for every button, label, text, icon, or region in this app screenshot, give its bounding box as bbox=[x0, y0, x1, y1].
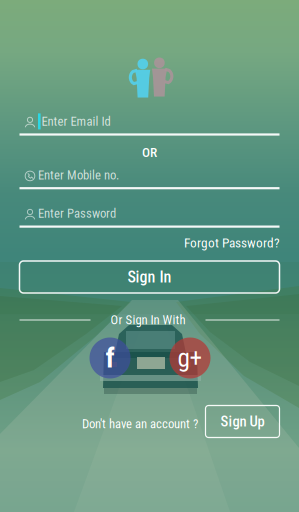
staticText: Enter Email Id bbox=[42, 114, 111, 129]
staticText: Enter Mobile no. bbox=[38, 168, 119, 182]
button[interactable]: Sign in with Google bbox=[169, 337, 210, 378]
button[interactable]: Sign Up bbox=[205, 405, 279, 437]
staticText: Or Sign In With bbox=[110, 313, 185, 327]
button[interactable]: Sign in with Facebook bbox=[89, 337, 130, 378]
staticText: f bbox=[105, 342, 114, 374]
staticText: Forgot Password? bbox=[184, 235, 280, 251]
staticText: g+ bbox=[177, 343, 202, 373]
button[interactable]: Sign In bbox=[19, 261, 279, 293]
staticText: OR bbox=[142, 145, 157, 160]
staticText: Don't have an account ? bbox=[82, 417, 198, 431]
staticText: Sign In bbox=[127, 268, 171, 286]
button[interactable]: Forgot Password? bbox=[180, 231, 284, 255]
staticText: Enter Password bbox=[38, 206, 116, 221]
staticText: Sign Up bbox=[220, 413, 264, 430]
